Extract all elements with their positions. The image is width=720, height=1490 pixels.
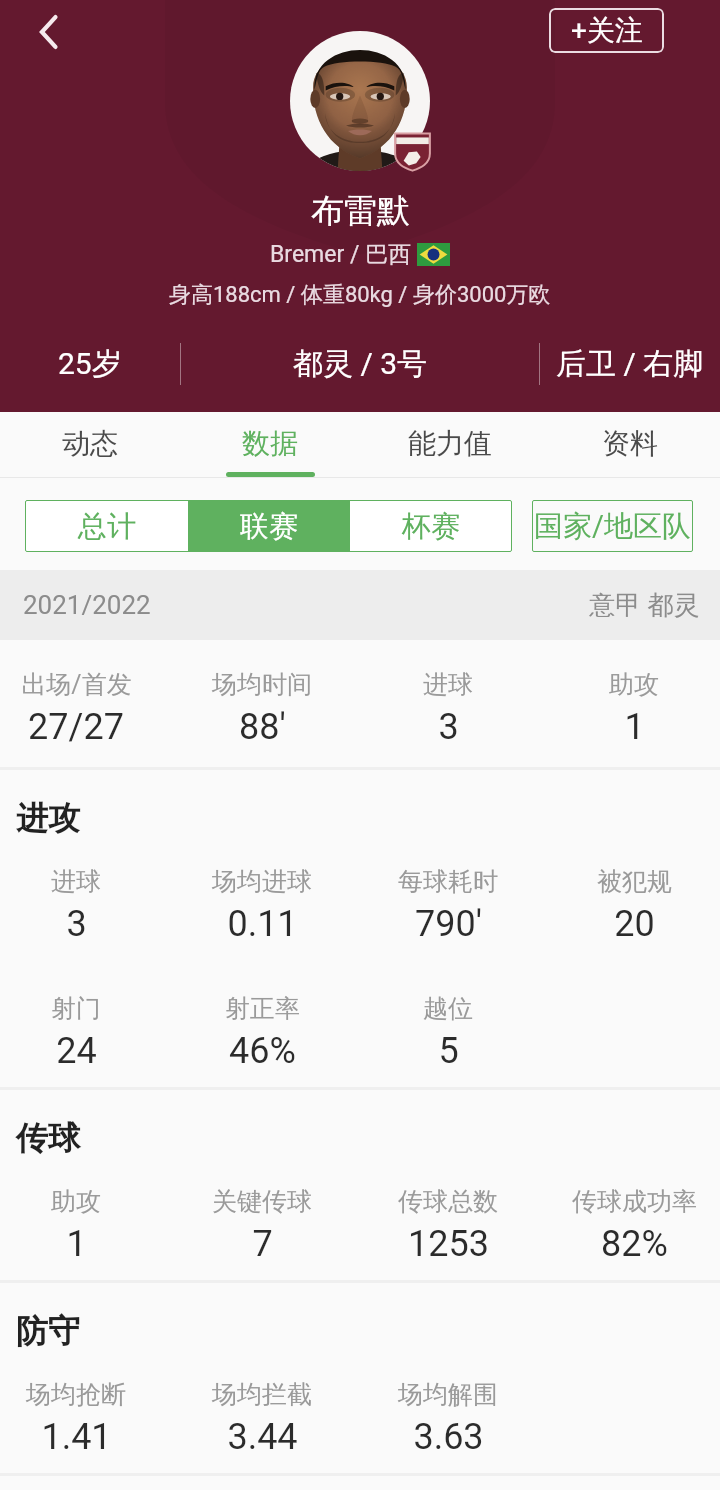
staticText: 3 [438,706,459,748]
staticText: 25岁 [58,345,122,383]
staticText: 3 [66,903,87,945]
staticText: 进球 [423,669,473,700]
staticText: 被犯规 [597,866,672,897]
button[interactable]: 总计 [25,500,188,552]
staticText: 1.41 [41,1416,112,1458]
staticText: 5 [438,1030,459,1072]
staticText: 1253 [408,1223,489,1265]
staticText: 0.11 [227,903,298,945]
staticText: 场均拦截 [212,1379,312,1410]
staticText: 3.63 [413,1416,484,1458]
staticText: 助攻 [51,1186,101,1217]
button[interactable]: 杯赛 [350,500,512,552]
staticText: 进攻 [16,798,80,838]
button[interactable]: 数据 [180,412,360,478]
button[interactable]: 动态 [0,412,180,478]
staticText: 88' [239,706,286,748]
button[interactable]: 国家/地区队 [532,500,693,552]
staticText: 790' [415,903,482,945]
staticText: 总计 [78,508,136,545]
staticText: 身高188cm / 体重80kg / 身价3000万欧 [169,281,551,309]
staticText: 场均时间 [212,669,312,700]
staticText: 资料 [602,426,658,461]
button[interactable]: 资料 [540,412,720,478]
staticText: 射门 [51,993,101,1024]
staticText: 7 [252,1223,273,1265]
staticText: Bremer / 巴西 [270,240,417,269]
staticText: 关键传球 [212,1186,312,1217]
staticText: 防守 [16,1311,80,1351]
staticText: 越位 [423,993,473,1024]
staticText: 每球耗时 [398,866,498,897]
staticText: 46% [229,1030,296,1072]
staticText: 意甲 都灵 [589,589,700,622]
staticText: 1 [624,706,645,748]
staticText: 场均解围 [398,1379,498,1410]
staticText: +关注 [571,13,643,48]
staticText: 82% [601,1223,668,1265]
staticText: 布雷默 [311,190,410,232]
staticText: 场均抢断 [26,1379,126,1410]
staticText: 传球成功率 [572,1186,697,1217]
staticText: 助攻 [609,669,659,700]
staticText: 杯赛 [402,508,460,545]
button[interactable]: Back [18,2,78,62]
staticText: 能力值 [408,426,492,461]
staticText: 3.44 [227,1416,298,1458]
button[interactable]: 联赛 [188,500,350,552]
staticText: 都灵 / 3号 [293,345,428,383]
staticText: 27/27 [28,706,124,748]
staticText: 传球 [16,1118,80,1158]
staticText: 传球总数 [398,1186,498,1217]
staticText: 20 [614,903,655,945]
staticText: 24 [56,1030,97,1072]
button[interactable]: +关注 [549,8,664,53]
staticText: 2021/2022 [23,590,151,620]
staticText: 出场/首发 [21,669,132,700]
staticText: 进球 [51,866,101,897]
staticText: 1 [66,1223,87,1265]
staticText: 数据 [242,426,298,461]
staticText: 后卫 / 右脚 [556,345,704,383]
button[interactable]: 能力值 [360,412,540,478]
staticText: 场均进球 [212,866,312,897]
staticText: 国家/地区队 [534,508,691,545]
staticText: 动态 [62,426,118,461]
staticText: 联赛 [240,508,298,545]
staticText: 射正率 [225,993,300,1024]
